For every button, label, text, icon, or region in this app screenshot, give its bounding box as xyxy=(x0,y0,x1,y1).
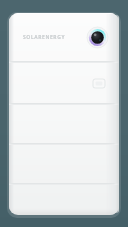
button[interactable]: SOLARENERGY xyxy=(9,13,119,215)
button[interactable]: Status indicator xyxy=(87,27,108,48)
button[interactable]: Battery module xyxy=(93,79,105,88)
button[interactable]: Battery module xyxy=(9,63,119,103)
button[interactable] xyxy=(9,185,119,215)
button[interactable] xyxy=(9,105,119,143)
button[interactable]: SOLARENERGY xyxy=(9,13,119,61)
button[interactable] xyxy=(9,145,119,183)
staticText: SOLARENERGY xyxy=(23,34,65,41)
